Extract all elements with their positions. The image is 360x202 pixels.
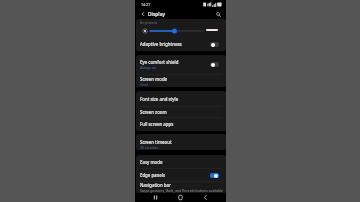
button[interactable]: Home <box>176 193 185 202</box>
staticText: Adaptive brightness <box>140 41 182 47</box>
staticText: Edge panels <box>140 172 166 178</box>
button[interactable]: Screen zoom <box>136 107 226 117</box>
button[interactable]: Adaptive brightness <box>136 37 226 51</box>
button[interactable]: Recents <box>151 193 160 202</box>
staticText: Always on <box>140 65 156 70</box>
button[interactable]: Brightness slider <box>136 25 226 37</box>
staticText: Easy mode <box>140 159 163 165</box>
staticText: Swipe gestures, Back, and Recents button… <box>140 188 223 193</box>
staticText: Display <box>148 11 166 18</box>
staticText: 14:27 <box>141 2 151 7</box>
button[interactable]: Edge panels <box>136 169 226 181</box>
staticText: 30 seconds <box>140 145 158 150</box>
staticText: Screen zoom <box>140 109 167 115</box>
button[interactable]: Easy mode <box>136 155 226 168</box>
staticText: Font size and style <box>140 96 179 102</box>
staticText: Navigation bar <box>140 182 171 188</box>
button[interactable]: Font size and style <box>136 91 226 106</box>
staticText: Full screen apps <box>140 121 174 127</box>
staticText: Vivid <box>140 82 148 87</box>
button[interactable]: Full screen apps <box>136 118 226 130</box>
button[interactable]: Screen mode <box>136 75 226 87</box>
staticText: Brightness <box>140 20 158 25</box>
staticText: Screen mode <box>140 76 168 82</box>
staticText: Screen timeout <box>140 139 172 145</box>
button[interactable]: Navigate up <box>139 10 147 18</box>
button[interactable]: Search <box>214 10 222 18</box>
button[interactable]: Screen timeout <box>136 138 226 150</box>
button[interactable]: Eye comfort shield <box>136 55 226 74</box>
button[interactable]: Navigation bar <box>136 182 226 193</box>
button[interactable]: Back <box>201 193 210 202</box>
staticText: Eye comfort shield <box>140 59 179 65</box>
